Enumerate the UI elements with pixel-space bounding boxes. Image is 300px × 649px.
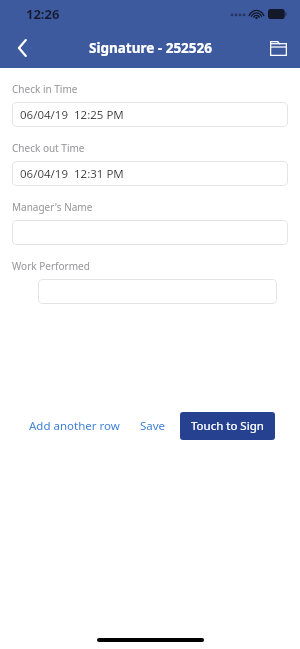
button[interactable]: Back (0, 28, 44, 68)
staticText: Add another row (29, 418, 120, 434)
staticText: Save (140, 418, 166, 434)
staticText: Manager's Name (12, 200, 93, 214)
button[interactable]: Add another row (25, 414, 124, 438)
button[interactable]: Save (136, 414, 170, 438)
staticText: 12:26 (26, 5, 60, 23)
staticText: Touch to Sign (191, 418, 264, 434)
staticText: Work Performed (12, 259, 90, 273)
button[interactable]: Touch to Sign (180, 412, 275, 440)
button[interactable]: 06/04/19 12:31 PM (12, 161, 288, 186)
button[interactable] (12, 220, 288, 245)
staticText: Check in Time (12, 82, 78, 96)
button[interactable]: 06/04/19 12:25 PM (12, 102, 288, 127)
staticText: Signature - 252526 (89, 39, 212, 57)
staticText: Check out Time (12, 141, 85, 155)
staticText: 06/04/19 12:31 PM (20, 166, 124, 182)
staticText: 06/04/19 12:25 PM (20, 107, 124, 123)
button[interactable] (38, 279, 277, 304)
button[interactable]: Folder (256, 28, 300, 68)
